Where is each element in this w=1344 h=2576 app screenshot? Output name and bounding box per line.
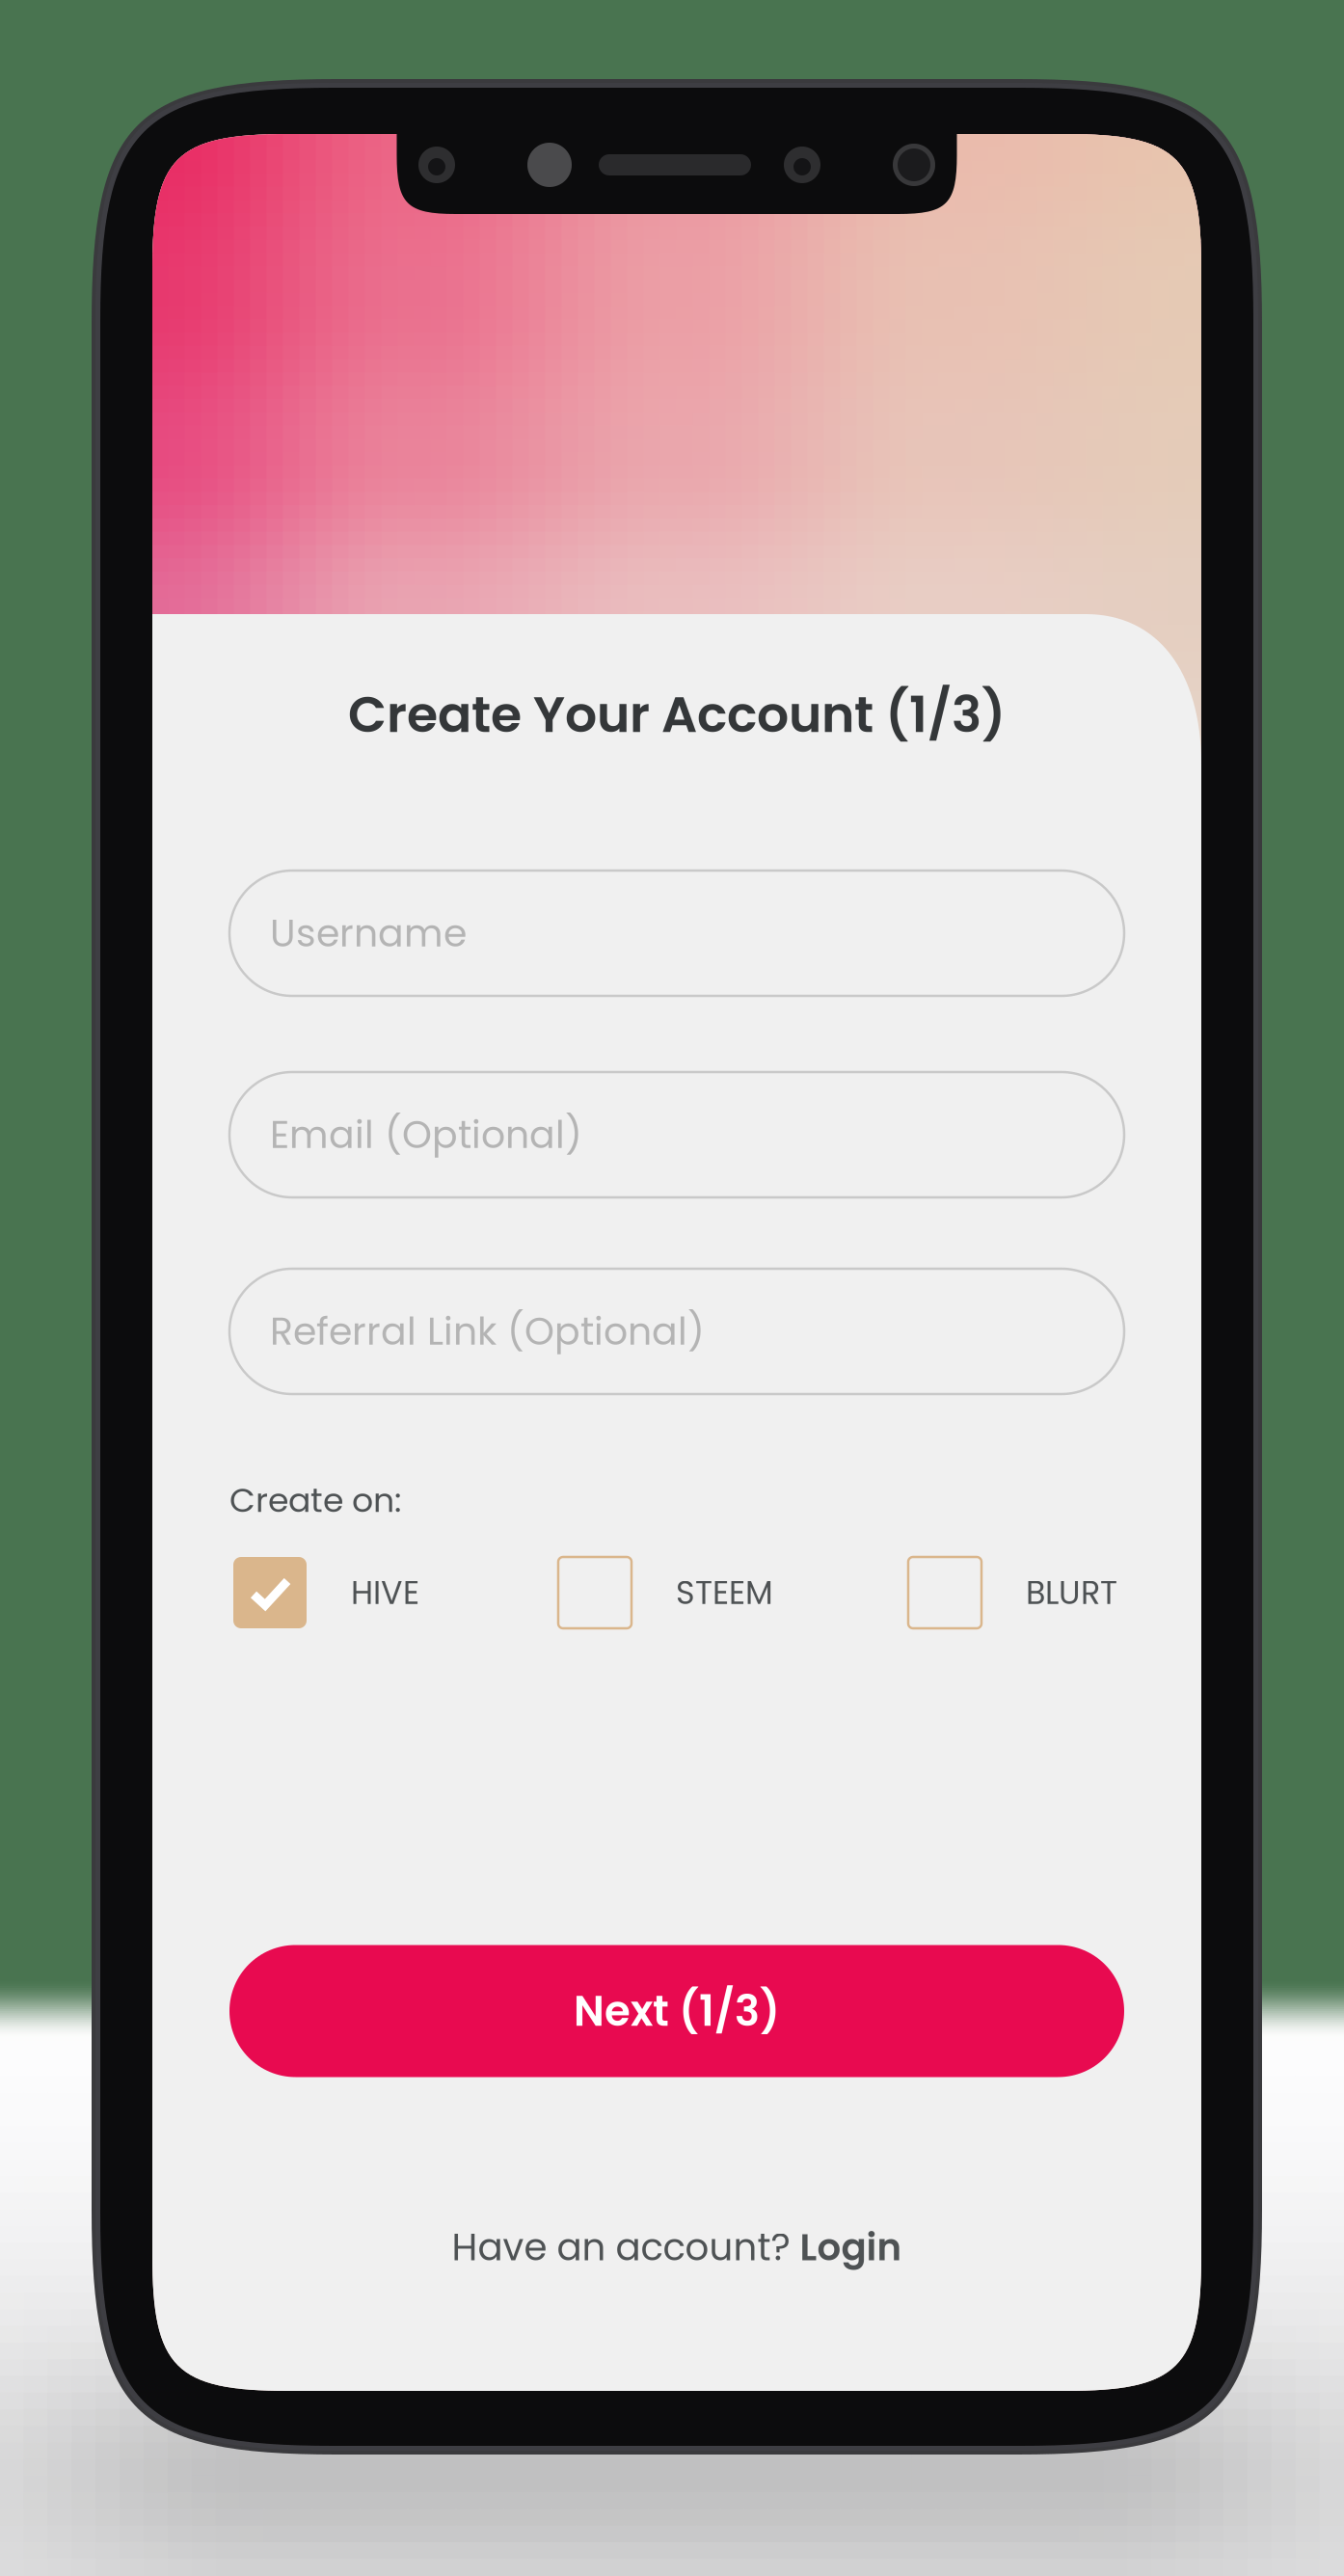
staticText: Referral Link (Optional) xyxy=(270,1305,705,1358)
button[interactable]: HIVE xyxy=(233,1557,419,1628)
staticText: Create on: xyxy=(229,1477,401,1523)
button[interactable]: Have an account? Login xyxy=(452,2222,902,2273)
button[interactable]: STEEM xyxy=(558,1557,773,1628)
button[interactable]: Referral Link (Optional) xyxy=(229,1269,1124,1394)
button[interactable]: BLURT xyxy=(908,1557,1117,1628)
button[interactable]: Email (Optional) xyxy=(229,1072,1124,1197)
staticText: STEEM xyxy=(676,1570,773,1615)
staticText: HIVE xyxy=(351,1570,419,1615)
button[interactable]: Username xyxy=(229,871,1124,996)
staticText: Username xyxy=(270,907,467,960)
staticText: Create Your Account (1/3) xyxy=(348,679,1006,749)
button[interactable]: Next (1/3) xyxy=(229,1945,1124,2077)
staticText: BLURT xyxy=(1026,1570,1117,1615)
staticText: Next (1/3) xyxy=(574,1982,780,2040)
staticText: Email (Optional) xyxy=(270,1108,582,1161)
staticText: Have an account? Login xyxy=(452,2222,902,2273)
